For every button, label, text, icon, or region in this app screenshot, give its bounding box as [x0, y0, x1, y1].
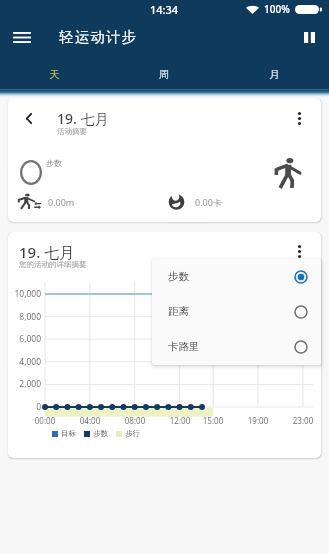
staticText: 15:00 [198, 415, 228, 426]
staticText: 19. 七月 [19, 242, 75, 262]
staticText: 您的活动的详细摘要 [19, 260, 87, 269]
staticText: 08:00 [120, 415, 150, 426]
staticText: 00:00 [30, 415, 60, 426]
staticText: 周 [159, 68, 170, 81]
button[interactable]: 周 [109, 56, 219, 92]
staticText: 8,000 [8, 311, 41, 323]
staticText: 步数 [168, 270, 189, 283]
staticText: 23:00 [288, 415, 318, 426]
staticText: 月 [269, 68, 280, 81]
button[interactable]: 距离 [152, 294, 321, 329]
staticText: 距离 [168, 305, 189, 318]
staticText: 04:00 [75, 415, 105, 426]
staticText: 100% [264, 2, 290, 16]
staticText: 2,000 [8, 378, 41, 390]
button[interactable]: More options [285, 105, 313, 131]
staticText: 14:34 [150, 2, 179, 17]
staticText: 10,000 [8, 288, 41, 300]
staticText: 天 [49, 68, 60, 81]
button[interactable]: Menu [0, 18, 44, 56]
button[interactable]: 卡路里 [152, 329, 321, 364]
staticText: 12:00 [165, 415, 195, 426]
staticText: 4,000 [8, 356, 41, 368]
staticText: 步数 [93, 429, 108, 438]
button[interactable]: 天 [0, 56, 109, 92]
staticText: 0.00m [48, 196, 75, 208]
staticText: 0 [8, 401, 41, 413]
staticText: 步行 [125, 429, 140, 438]
staticText: 步数 [46, 158, 62, 168]
staticText: 19:00 [243, 415, 273, 426]
staticText: 0.00卡 [195, 196, 222, 208]
button[interactable]: Chart options [285, 238, 313, 264]
staticText: 活动摘要 [57, 127, 87, 136]
button[interactable]: 步数 [152, 259, 321, 294]
staticText: 目标 [61, 429, 76, 438]
button[interactable]: Previous day [14, 105, 44, 131]
staticText: 卡路里 [168, 340, 200, 353]
staticText: 6,000 [8, 333, 41, 345]
staticText: 19. 七月 [57, 109, 109, 128]
staticText: 轻运动计步 [59, 28, 138, 46]
button[interactable]: Pause [289, 18, 329, 56]
button[interactable]: 月 [219, 56, 329, 92]
